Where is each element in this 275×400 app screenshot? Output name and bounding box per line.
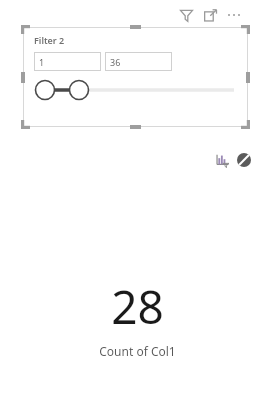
staticText: 1: [39, 56, 45, 68]
button[interactable]: Filters: [176, 5, 196, 25]
staticText: 36: [110, 56, 121, 68]
button[interactable]: 36: [105, 52, 172, 71]
staticText: 28: [111, 275, 164, 338]
staticText: Filter 2: [34, 34, 65, 46]
staticText: Count of Col1: [99, 343, 176, 359]
button[interactable]: Filter 2: [23, 27, 248, 127]
button[interactable]: Range slider: [34, 79, 234, 101]
button[interactable]: 28: [0, 275, 275, 359]
button[interactable]: 1: [34, 52, 101, 71]
button[interactable]: No interaction: [234, 150, 254, 170]
button[interactable]: Focus mode: [200, 5, 220, 25]
button[interactable]: More options: [224, 5, 244, 25]
button[interactable]: Filters applied: [212, 150, 232, 170]
